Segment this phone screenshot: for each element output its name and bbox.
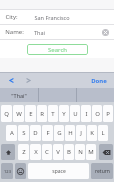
button[interactable]: Backspace	[99, 144, 113, 160]
button[interactable]: R	[37, 105, 47, 122]
button[interactable]: U	[70, 105, 80, 122]
staticText: space	[52, 168, 66, 175]
staticText: X	[34, 148, 38, 156]
staticText: Q	[4, 110, 9, 118]
staticText: San Francisco	[34, 14, 70, 21]
button[interactable]: I	[81, 105, 91, 122]
button[interactable]: G	[54, 125, 64, 141]
button[interactable]: W	[13, 105, 24, 122]
button[interactable]: D	[30, 125, 41, 141]
staticText: return	[95, 168, 110, 175]
staticText: P	[106, 110, 110, 118]
staticText: City:	[5, 13, 18, 21]
button[interactable]: Y	[59, 105, 69, 122]
staticText: K	[90, 129, 94, 137]
staticText: O	[95, 110, 100, 118]
button[interactable]: V	[53, 144, 63, 160]
staticText: N	[78, 148, 83, 156]
staticText: L	[101, 129, 105, 137]
button[interactable]: P	[103, 105, 113, 122]
staticText: J	[80, 129, 82, 137]
staticText: 123	[4, 169, 11, 174]
button[interactable]: S	[18, 125, 29, 141]
button[interactable]: E	[25, 105, 36, 122]
button[interactable]: K	[87, 125, 97, 141]
button[interactable]: space	[28, 163, 89, 179]
button[interactable]: Q	[1, 105, 12, 122]
staticText: E	[29, 110, 33, 118]
button[interactable]: Done	[91, 74, 107, 87]
staticText: A	[10, 129, 14, 137]
button[interactable]: return	[91, 163, 113, 179]
button[interactable]: L	[98, 125, 108, 141]
staticText: "Thai"	[11, 92, 27, 99]
staticText: Thai	[34, 29, 45, 36]
button[interactable]: Clear text	[101, 28, 110, 37]
button[interactable]: Search	[27, 44, 88, 55]
button[interactable]: T	[48, 105, 58, 122]
staticText: Name:	[5, 28, 24, 36]
button[interactable]: City:	[5, 10, 110, 24]
staticText: H	[68, 129, 73, 137]
staticText: F	[46, 129, 50, 137]
staticText: V	[56, 148, 60, 156]
staticText: U	[73, 110, 78, 118]
button[interactable]: 123	[1, 163, 13, 179]
button[interactable]: "Thai"	[0, 88, 38, 102]
staticText: C	[45, 148, 49, 156]
staticText: B	[67, 148, 71, 156]
staticText: R	[40, 110, 44, 118]
staticText: I	[85, 110, 88, 118]
button[interactable]: A	[6, 125, 17, 141]
button[interactable]: Emoji	[15, 163, 26, 179]
button[interactable]: C	[42, 144, 52, 160]
button[interactable]: M	[86, 144, 96, 160]
button[interactable]: N	[75, 144, 85, 160]
staticText: M	[88, 148, 94, 156]
button[interactable]: Previous field	[5, 74, 18, 87]
button[interactable]: X	[30, 144, 41, 160]
button[interactable]: Shift	[1, 144, 15, 160]
staticText: Z	[22, 148, 26, 156]
staticText: Y	[62, 110, 66, 118]
staticText: S	[22, 129, 26, 137]
button[interactable]: Next field	[22, 74, 35, 87]
button[interactable]: J	[76, 125, 86, 141]
button[interactable]: Name:	[5, 25, 110, 39]
button[interactable]: O	[92, 105, 102, 122]
staticText: G	[57, 129, 62, 137]
button[interactable]: F	[42, 125, 53, 141]
button[interactable]: H	[65, 125, 75, 141]
staticText: T	[51, 110, 55, 118]
button[interactable]: Z	[18, 144, 29, 160]
staticText: D	[33, 129, 38, 137]
staticText: W	[16, 110, 22, 118]
staticText: Done	[91, 77, 107, 85]
staticText: Search	[48, 46, 67, 54]
button[interactable]: B	[64, 144, 74, 160]
